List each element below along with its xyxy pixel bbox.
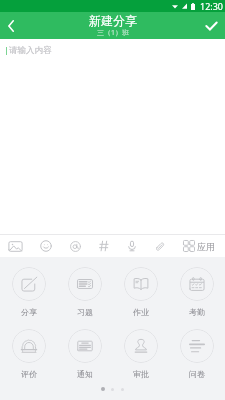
staticText: 审批 (133, 369, 149, 379)
button[interactable]: 审批 (113, 329, 169, 379)
staticText: 考勤 (189, 307, 205, 317)
staticText: 12:30 (200, 0, 224, 12)
button[interactable]: 分享 (0, 267, 57, 317)
button[interactable]: Topic (91, 235, 117, 257)
staticText: 问卷 (189, 369, 205, 379)
staticText: 请输入内容 (9, 45, 52, 56)
staticText: 习题 (77, 307, 93, 317)
staticText: 通知 (77, 369, 93, 379)
button[interactable]: Back (0, 12, 21, 39)
button[interactable]: 作业 (113, 267, 169, 317)
staticText: 三（1）班 (97, 28, 130, 38)
button[interactable]: Image (2, 235, 28, 257)
button[interactable]: Attachment (146, 235, 172, 257)
button[interactable]: 应用 (180, 235, 225, 257)
button[interactable]: 问卷 (169, 329, 225, 379)
button[interactable]: Emoji (33, 235, 59, 257)
staticText: 评价 (21, 369, 37, 379)
staticText: 作业 (133, 307, 149, 317)
staticText: 应用 (197, 241, 215, 252)
button[interactable]: 评价 (0, 329, 57, 379)
button[interactable]: 习题 (57, 267, 113, 317)
button[interactable]: 考勤 (169, 267, 225, 317)
staticText: 分享 (21, 307, 37, 317)
button[interactable]: Confirm (197, 12, 225, 39)
staticText: 新建分享 (89, 13, 137, 28)
button[interactable]: 通知 (57, 329, 113, 379)
button[interactable]: Mention (62, 235, 88, 257)
button[interactable]: Voice (119, 235, 145, 257)
